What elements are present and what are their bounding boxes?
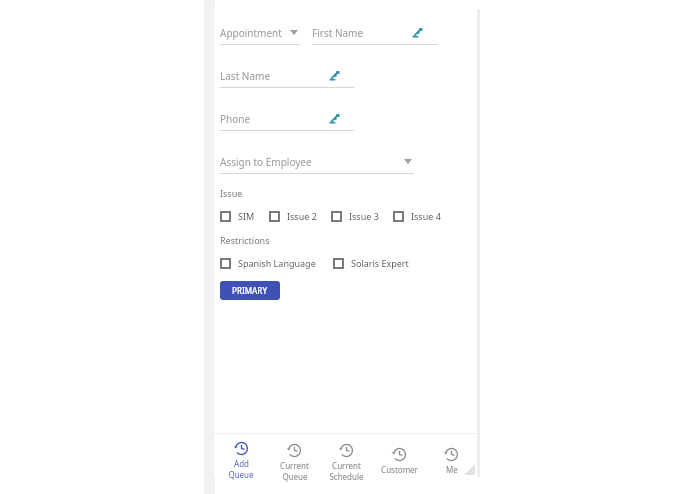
staticText: Add	[234, 458, 249, 469]
button[interactable]: Phone	[220, 111, 355, 131]
staticText: Appointment	[220, 26, 282, 40]
staticText: Current	[280, 460, 309, 471]
staticText: Issue 2	[287, 210, 317, 222]
button[interactable]: Issue 4	[393, 210, 441, 222]
staticText: Issue	[220, 187, 243, 199]
staticText: PRIMARY	[232, 285, 268, 296]
staticText: Customer	[381, 464, 418, 475]
staticText: Queue	[282, 471, 308, 482]
staticText: Current	[332, 460, 361, 471]
staticText: Phone	[220, 112, 251, 126]
button[interactable]: Solaris Expert	[333, 257, 409, 269]
button[interactable]: Issue 2	[269, 210, 317, 222]
button[interactable]: SIM	[220, 210, 255, 222]
button[interactable]: First Name	[312, 25, 438, 45]
staticText: First Name	[312, 26, 364, 40]
button[interactable]: Me	[425, 447, 477, 487]
button[interactable]: Assign to Employee	[220, 154, 414, 174]
staticText: Spanish Language	[238, 257, 316, 269]
button[interactable]: Customer	[373, 447, 425, 487]
button[interactable]: Spanish Language	[220, 257, 316, 269]
button[interactable]: Add	[215, 441, 267, 481]
staticText: Issue 4	[411, 210, 441, 222]
button[interactable]: PRIMARY	[220, 281, 280, 300]
button[interactable]: Current	[320, 443, 372, 483]
staticText: Assign to Employee	[220, 155, 312, 169]
staticText: SIM	[238, 210, 255, 222]
staticText: Queue	[228, 469, 254, 480]
staticText: Issue 3	[349, 210, 379, 222]
button[interactable]: Last Name	[220, 68, 355, 88]
staticText: Schedule	[329, 471, 364, 482]
staticText: Me	[446, 464, 458, 475]
button[interactable]: Issue 3	[331, 210, 379, 222]
button[interactable]: Appointment	[220, 25, 300, 45]
staticText: Restrictions	[220, 234, 270, 246]
button[interactable]: Current	[268, 443, 320, 483]
staticText: Last Name	[220, 69, 271, 83]
staticText: Solaris Expert	[351, 257, 409, 269]
